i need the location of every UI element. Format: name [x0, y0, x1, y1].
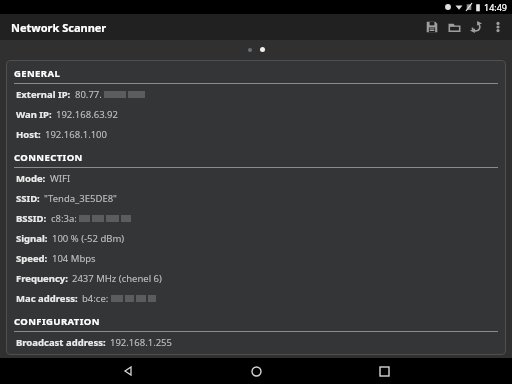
button[interactable]: Signal: [14, 228, 498, 248]
button[interactable]: BSSID: [14, 208, 498, 228]
staticText: CONFIGURATION [14, 315, 100, 328]
staticText: Mode: [16, 172, 46, 185]
button[interactable]: Refresh [465, 14, 487, 40]
staticText: SSID: [16, 192, 40, 205]
staticText: External IP: [16, 88, 71, 101]
staticText: 100 % (-52 dBm) [52, 232, 125, 245]
staticText: BSSID: [16, 212, 47, 225]
button[interactable]: Back [114, 358, 142, 384]
staticText: GENERAL [14, 67, 61, 80]
staticText: 104 Mbps [52, 252, 96, 265]
button[interactable]: Broadcast address: [14, 332, 498, 352]
button[interactable]: More options [487, 14, 509, 40]
button[interactable]: Save [421, 14, 443, 40]
button[interactable]: Wan IP: [14, 104, 498, 124]
button[interactable]: SSID: [14, 188, 498, 208]
button[interactable]: External IP: [14, 84, 498, 104]
staticText: 80.77. [75, 88, 102, 101]
staticText: Host: [16, 128, 41, 141]
staticText: Speed: [16, 252, 48, 265]
staticText: c8:3a: [51, 212, 77, 225]
staticText: Signal: [16, 232, 48, 245]
staticText: 192.168.1.100 [45, 128, 107, 141]
button[interactable]: Host: [14, 124, 498, 144]
staticText: Broadcast address: [16, 336, 106, 349]
button[interactable]: Frequency: [14, 268, 498, 288]
button[interactable]: Mac address: [14, 288, 498, 308]
staticText: 14:49 [484, 1, 508, 13]
staticText: Mac address: [16, 292, 78, 305]
button[interactable]: Speed: [14, 248, 498, 268]
button[interactable]: Open folder [443, 14, 465, 40]
button[interactable]: Recent apps [370, 358, 398, 384]
staticText: 192.168.1.255 [110, 336, 172, 349]
staticText: 192.168.63.92 [56, 108, 118, 121]
staticText: Network Scanner [11, 20, 107, 35]
staticText: CONNECTION [14, 151, 83, 164]
staticText: b4:ce: [82, 292, 109, 305]
staticText: Frequency: [16, 272, 68, 285]
staticText: "Tenda_3E5DE8" [44, 192, 117, 205]
button[interactable]: Home [242, 358, 270, 384]
staticText: Wan IP: [16, 108, 52, 121]
button[interactable]: Mode: [14, 168, 498, 188]
staticText: WIFI [50, 172, 71, 185]
staticText: 2437 MHz (chenel 6) [72, 272, 162, 285]
